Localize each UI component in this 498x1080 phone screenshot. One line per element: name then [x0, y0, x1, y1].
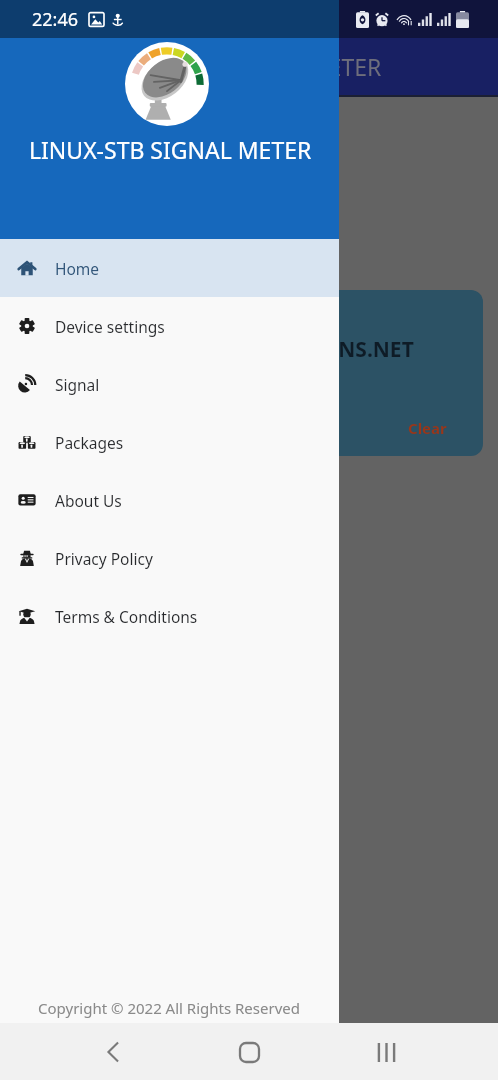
button[interactable]: Back — [89, 1028, 137, 1076]
staticText: Home — [55, 258, 100, 279]
button[interactable]: Privacy Policy — [0, 529, 339, 587]
button[interactable]: Clear — [408, 418, 483, 456]
staticText: Signal — [55, 374, 100, 395]
button[interactable]: Signal — [0, 355, 339, 413]
staticText: Privacy Policy — [55, 548, 153, 569]
staticText: WWW.LINUXSTB-STATIONS.NET — [89, 335, 414, 364]
button[interactable]: Terms & Conditions — [0, 587, 339, 645]
staticText: Clear — [408, 418, 447, 438]
button[interactable]: Home — [225, 1028, 273, 1076]
button[interactable]: Packages — [0, 413, 339, 471]
button[interactable]: About Us — [0, 471, 339, 529]
button[interactable]: Recent apps — [362, 1028, 410, 1076]
staticText: Device settings — [55, 316, 165, 337]
staticText: About Us — [55, 490, 122, 511]
staticText: Terms & Conditions — [55, 606, 198, 627]
staticText: Packages — [55, 432, 124, 453]
staticText: 22:46 — [32, 7, 79, 32]
staticText: Copyright © 2022 All Rights Reserved — [38, 998, 300, 1018]
staticText: LINUX-STB SIGNAL METER — [29, 134, 312, 165]
staticText: LINUX-STB SIGNAL METER — [99, 51, 382, 82]
button[interactable]: Home — [0, 239, 339, 297]
button[interactable]: Device settings — [0, 297, 339, 355]
